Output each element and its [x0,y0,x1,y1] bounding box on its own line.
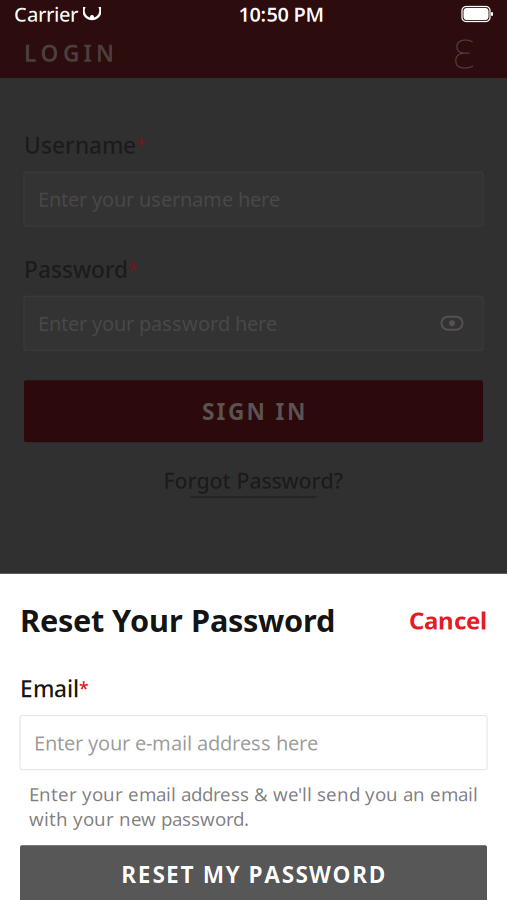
button[interactable]: R [20,845,487,900]
staticText: * [128,258,137,281]
staticText: S [202,396,214,426]
staticText: Password [24,254,128,284]
staticText: S [152,859,164,889]
staticText: Enter your password here [38,310,277,336]
staticText: I [83,38,91,68]
staticText: W [309,859,331,889]
button[interactable]: Forgot Password? [163,466,343,497]
staticText: Forgot Password? [163,466,343,494]
staticText: R [121,859,136,889]
staticText: Y [225,859,239,889]
staticText: N [246,396,264,426]
staticText: D [369,859,386,889]
staticText: Email [20,673,79,704]
staticText: Cancel [409,604,487,636]
button[interactable]: Show password [435,306,469,340]
staticText: I [216,396,225,426]
staticText: R [352,859,367,889]
staticText: Username [24,130,136,160]
staticText: A [264,859,280,889]
staticText: G [228,396,244,426]
staticText: S [282,859,294,889]
staticText: 10:50 PM [238,1,324,27]
staticText: Enter your email address & we'll send yo… [29,782,478,831]
button[interactable]: Brand logo [445,31,483,75]
staticText: T [181,859,194,889]
staticText: O [333,859,351,889]
staticText: Enter your username here [38,186,280,212]
staticText: I [275,396,284,426]
staticText: * [79,677,88,700]
staticText: L [24,38,36,68]
staticText: M [203,859,224,889]
staticText: O [40,38,58,68]
staticText: Ɛ [453,26,475,79]
staticText: G [63,38,79,68]
staticText: E [138,859,151,889]
staticText: S [295,859,307,889]
staticText: N [287,396,305,426]
button[interactable]: S [24,380,483,442]
staticText: N [96,38,114,68]
staticText: Enter your e-mail address here [34,729,318,756]
staticText: E [166,859,179,889]
staticText: * [136,133,145,156]
staticText: Reset Your Password [20,600,335,640]
staticText: P [249,859,263,889]
staticText: Carrier [14,1,78,27]
button[interactable]: Cancel [409,604,487,636]
